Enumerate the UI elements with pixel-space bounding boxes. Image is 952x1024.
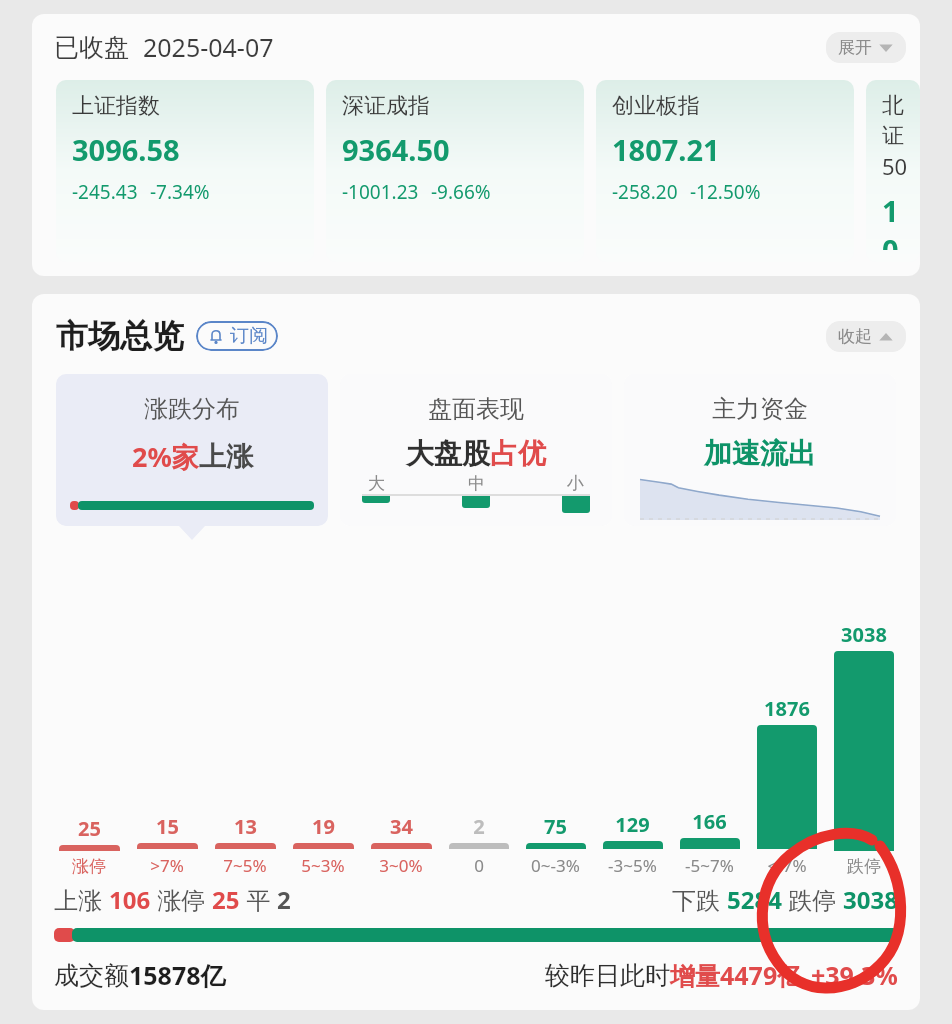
staticText: 盘面表现 [428,394,524,424]
button[interactable]: 2 [440,813,517,877]
staticText: 较昨日此时 [545,960,670,991]
staticText: 涨停 [72,856,106,877]
staticText: 上涨 [54,883,109,916]
staticText: 5~3% [301,854,345,877]
staticText: 市场总览 [56,316,184,356]
button[interactable]: 展开 [826,32,906,63]
staticText: 收起 [838,326,872,347]
staticText: >7% [150,854,184,877]
button[interactable]: 75 [517,813,594,877]
staticText: -245.43 [72,179,138,205]
staticText: 13 [234,813,257,840]
staticText: 2 [473,813,485,840]
staticText: 3096.58 [72,130,180,169]
staticText: 已收盘 [54,32,129,63]
staticText: 2 [277,883,291,916]
staticText: <-7% [767,854,807,877]
staticText: 平 [240,883,277,916]
button[interactable]: 订阅 [196,321,278,351]
staticText: 深证成指 [342,92,430,120]
button[interactable]: 166 [671,808,748,877]
staticText: 7~5% [223,854,267,877]
staticText: 下跌 [672,883,727,916]
staticText: 订阅 [230,324,268,348]
button[interactable]: 盘面表现 [340,374,612,526]
button[interactable]: 15 [128,813,206,877]
staticText: 15878亿 [129,958,226,992]
staticText: 106 [109,883,151,916]
staticText: -9.66% [431,179,491,205]
staticText: 5284 [727,883,782,916]
staticText: 25 [78,815,101,842]
button[interactable]: 深证成指 [326,80,584,262]
button[interactable]: 13 [206,813,284,877]
staticText: 2%家 [132,438,199,475]
staticText: 9364.50 [342,130,450,169]
button[interactable]: 北证50 [866,80,920,262]
button[interactable]: 19 [284,813,362,877]
staticText: 0~-3% [531,854,580,877]
button[interactable]: 收起 [826,321,906,352]
button[interactable]: 上证指数 [56,80,314,262]
staticText: 0 [474,854,484,877]
button[interactable]: 主力资金 [624,374,896,526]
staticText: -3~5% [608,854,657,877]
staticText: 3038 [843,883,898,916]
staticText: 创业板指 [612,92,700,120]
staticText: 3~0% [379,854,423,877]
button[interactable]: 3038 [825,621,902,877]
staticText: -1001.23 [342,179,419,205]
staticText: 129 [615,811,650,838]
button[interactable]: 129 [594,811,671,877]
staticText: 增量4479亿 [670,958,803,992]
staticText: 成交额 [54,960,129,991]
staticText: 中 [468,473,485,494]
staticText: 2025-04-07 [143,30,274,64]
staticText: 大 [368,473,385,494]
button[interactable]: 1876 [748,695,825,877]
staticText: 166 [692,808,727,835]
staticText: 15 [156,813,179,840]
staticText: 大盘股 [406,436,490,471]
staticText: 1807.21 [612,130,720,169]
staticText: -12.50% [690,179,761,205]
staticText: 加速流出 [704,436,816,471]
staticText: -5~7% [685,854,734,877]
button[interactable]: 涨跌分布 [56,374,328,526]
staticText: 跌停 [782,883,843,916]
staticText: 1876 [764,695,810,722]
staticText: 1012.34 [882,191,912,250]
staticText: 75 [544,813,567,840]
staticText: 小 [567,473,584,494]
staticText: 跌停 [847,856,881,877]
staticText: 34 [390,813,413,840]
staticText: 展开 [838,37,872,58]
staticText: 3038 [841,621,887,648]
button[interactable]: 25 [50,815,128,877]
staticText: 涨跌分布 [144,394,240,424]
staticText: -7.34% [150,179,210,205]
button[interactable]: 创业板指 [596,80,854,262]
staticText: -258.20 [612,179,678,205]
staticText: 主力资金 [712,394,808,424]
staticText: 上涨 [199,440,253,474]
button[interactable]: 34 [362,813,440,877]
staticText: 25 [212,883,240,916]
staticText: 上证指数 [72,92,160,120]
staticText: 19 [312,813,335,840]
staticText: 涨停 [151,883,212,916]
staticText: 占优 [490,436,546,471]
staticText: 北证50 [882,92,912,181]
staticText: +39.3% [811,958,898,992]
